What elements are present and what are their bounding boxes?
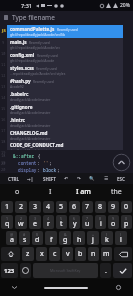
button[interactable]: 8 — [95, 201, 106, 213]
staticText: g — [63, 235, 68, 245]
button[interactable]: ) — [115, 231, 127, 245]
staticText: 1 — [5, 202, 10, 212]
button[interactable]: styles.scss — [7, 64, 123, 77]
staticText: 20% — [120, 2, 130, 9]
button[interactable]: ESC — [116, 175, 126, 183]
button[interactable]: I am — [67, 184, 100, 200]
staticText: 12 — [1, 73, 6, 78]
button[interactable]: Shift — [1, 247, 20, 261]
staticText: I — [49, 187, 52, 197]
staticText: f — [50, 235, 53, 245]
button[interactable]: main.js — [7, 38, 123, 51]
staticText: { — [35, 153, 41, 159]
button[interactable]: 8 — [95, 215, 106, 229]
button[interactable]: @ — [6, 231, 17, 245]
button[interactable]: Backspace — [114, 247, 132, 261]
button[interactable]: Emoji — [20, 263, 31, 278]
button[interactable]: 5 — [56, 201, 67, 213]
button[interactable]: CODE_OF_CONDUCT.md — [7, 142, 123, 150]
button[interactable]: c — [49, 247, 60, 261]
button[interactable]: .gitignore — [7, 103, 123, 116]
staticText: 2 — [19, 202, 24, 212]
button[interactable]: m — [101, 247, 112, 261]
button[interactable]: 7 — [82, 201, 93, 213]
button[interactable]: $ — [32, 231, 43, 245]
button[interactable]: ↶ — [63, 175, 69, 182]
button[interactable]: z — [22, 247, 34, 261]
button[interactable]: 5 — [56, 215, 67, 229]
button[interactable]: 123 — [1, 263, 18, 278]
staticText: # — [23, 232, 26, 237]
button[interactable]: Space — [33, 263, 98, 278]
staticText: Recently used — [33, 80, 54, 84]
button[interactable]: Back — [10, 283, 19, 292]
button[interactable]: ( — [101, 231, 113, 245]
button[interactable]: .hintrc — [7, 116, 123, 129]
button[interactable]: 9 — [108, 201, 119, 213]
button[interactable]: + — [87, 231, 99, 245]
button[interactable]: CTRL — [7, 175, 20, 183]
button[interactable]: ☰ — [103, 175, 110, 182]
staticText: 6 — [72, 202, 77, 212]
staticText: →| — [27, 176, 34, 182]
staticText: .hintrc — [10, 117, 25, 123]
button[interactable]: 1 — [1, 201, 13, 213]
button[interactable]: 2 — [15, 215, 27, 229]
staticText: 9 — [111, 202, 116, 212]
button[interactable]: the — [100, 184, 133, 200]
staticText: deadlyjack/Acode/master — [10, 97, 51, 102]
button[interactable]: 0 — [121, 201, 132, 213]
button[interactable]: 3 — [29, 215, 41, 229]
button[interactable]: & — [59, 231, 71, 245]
button[interactable]: o — [0, 184, 34, 200]
staticText: : — [37, 160, 43, 166]
button[interactable]: #hash.py — [7, 77, 123, 90]
button[interactable]: b — [75, 247, 86, 261]
button[interactable]: n — [88, 247, 99, 261]
button[interactable]: Scroll to top — [112, 153, 131, 172]
button[interactable]: ↷ — [76, 175, 82, 182]
button[interactable]: SHIFT — [42, 175, 57, 183]
staticText: CODE_OF_CONDUCT.md — [10, 142, 64, 148]
button[interactable]: . — [100, 263, 111, 278]
staticText: 5 — [59, 202, 64, 212]
button[interactable]: 9 — [108, 215, 119, 229]
staticText: a — [10, 235, 14, 245]
button[interactable]: 4 — [43, 215, 54, 229]
button[interactable]: 1 — [1, 215, 13, 229]
button[interactable]: .babelrc — [7, 90, 123, 103]
button[interactable]: Enter — [113, 263, 132, 278]
staticText: ESC — [117, 176, 125, 182]
button[interactable]: 🔍 — [88, 175, 96, 182]
button[interactable]: 6 — [69, 215, 80, 229]
staticText: _ — [50, 232, 52, 237]
button[interactable]: Menu — [0, 11, 133, 24]
button[interactable]: _ — [45, 231, 57, 245]
button[interactable]: - — [73, 231, 85, 245]
staticText: n — [91, 249, 96, 259]
button[interactable]: x — [36, 247, 47, 261]
button[interactable]: commandPalette.js — [7, 25, 123, 38]
button[interactable]: 0 — [121, 215, 132, 229]
staticText: 1 — [6, 216, 9, 221]
button[interactable]: →| — [26, 175, 35, 183]
button[interactable]: 3 — [29, 201, 41, 213]
staticText: 5 — [60, 216, 63, 221]
button[interactable]: CHANGELOG.md — [7, 129, 123, 142]
staticText: '' — [43, 160, 49, 166]
staticText: deadlyjack/Acode/master — [10, 148, 51, 150]
button[interactable]: config.xml — [7, 51, 123, 64]
staticText: 123 — [4, 267, 15, 275]
staticText: Recently used — [57, 28, 78, 32]
button[interactable]: Recents — [114, 283, 123, 292]
button[interactable]: Home — [44, 287, 88, 289]
staticText: y — [73, 219, 77, 229]
button[interactable]: 7 — [82, 215, 93, 229]
button[interactable]: v — [62, 247, 73, 261]
button[interactable]: I — [34, 184, 67, 200]
button[interactable]: 4 — [43, 201, 54, 213]
staticText: j — [92, 235, 94, 245]
button[interactable]: 2 — [15, 201, 27, 213]
button[interactable]: # — [19, 231, 30, 245]
button[interactable]: 6 — [69, 201, 80, 213]
